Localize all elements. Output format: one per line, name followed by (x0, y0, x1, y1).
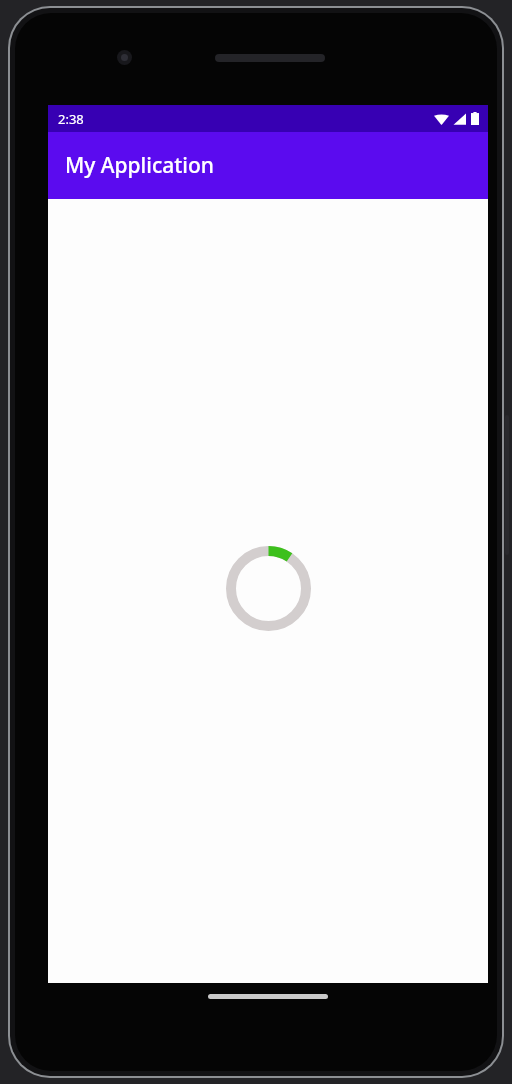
staticText: 2:38 (58, 110, 84, 128)
staticText: My Application (65, 151, 214, 180)
button[interactable]: My Application (48, 132, 488, 199)
other: Loading progress (226, 546, 311, 631)
